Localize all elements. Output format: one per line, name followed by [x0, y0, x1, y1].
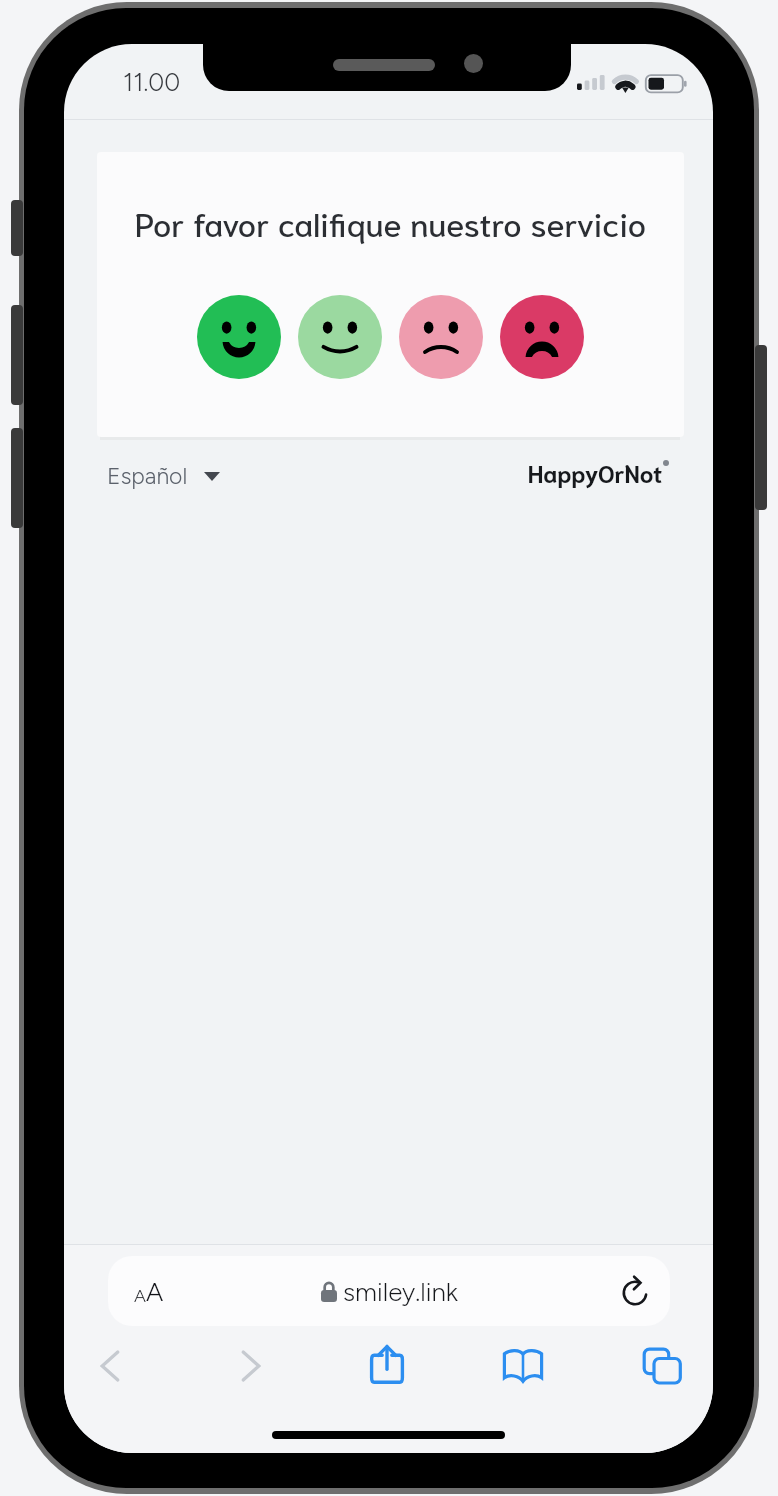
- button[interactable]: Bien: [298, 295, 382, 379]
- button[interactable]: Muy mal: [500, 295, 584, 379]
- staticText: Por favor califique nuestro servicio: [97, 201, 684, 244]
- staticText: A: [134, 1285, 146, 1307]
- button[interactable]: Español: [107, 462, 220, 490]
- button[interactable]: Tabs: [619, 1326, 705, 1406]
- staticText: smiley.link: [343, 1276, 458, 1307]
- button[interactable]: A: [108, 1256, 670, 1326]
- button[interactable]: Back: [67, 1326, 153, 1406]
- staticText: HappyOrNot: [528, 456, 663, 487]
- staticText: A: [146, 1276, 164, 1307]
- staticText: Español: [107, 462, 188, 490]
- button[interactable]: Reload: [602, 1256, 670, 1326]
- button[interactable]: Muy bien: [197, 295, 281, 379]
- button[interactable]: Mal: [399, 295, 483, 379]
- button[interactable]: Forward: [208, 1326, 294, 1406]
- button[interactable]: Bookmarks: [480, 1326, 566, 1406]
- button[interactable]: Share: [344, 1326, 430, 1406]
- staticText: 11.00: [123, 67, 181, 97]
